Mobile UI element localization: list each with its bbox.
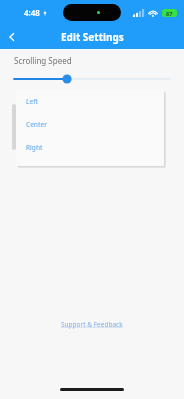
staticText: 87 [166, 10, 173, 17]
button[interactable]: Support & Feedback [55, 317, 129, 332]
staticText: Support & Feedback [61, 320, 123, 329]
staticText: 4:48 [24, 7, 40, 18]
button[interactable]: Right [16, 136, 164, 159]
staticText: Right [26, 143, 43, 152]
staticText: Edit Settings [61, 30, 124, 44]
staticText: Center [26, 120, 47, 129]
staticText: Left [26, 97, 39, 106]
staticText: Scrolling Speed [14, 55, 72, 66]
button[interactable]: Back [0, 25, 24, 49]
button[interactable]: Left [16, 90, 164, 113]
button[interactable]: Scrolling speed slider [0, 72, 184, 86]
button[interactable]: Center [16, 113, 164, 136]
